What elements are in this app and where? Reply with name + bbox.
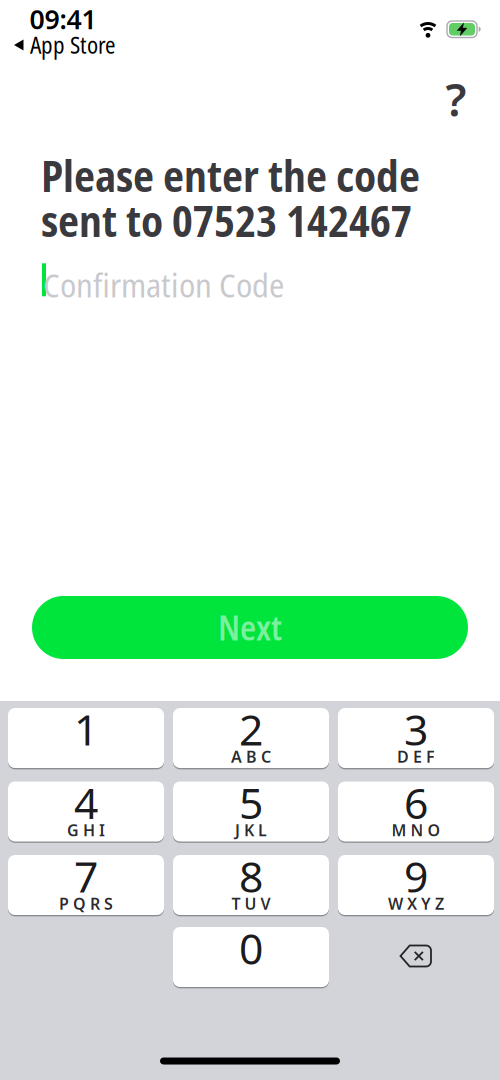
staticText: 9 (404, 848, 428, 904)
button[interactable]: 4 (8, 781, 164, 843)
staticText: Confirmation Code (43, 262, 284, 307)
button[interactable]: 2 (173, 708, 329, 769)
staticText: 1 (74, 701, 98, 757)
staticText: D E F (397, 746, 435, 767)
staticText: G H I (67, 819, 105, 841)
button[interactable]: 7 (8, 855, 164, 916)
staticText: W X Y Z (388, 893, 444, 914)
staticText: 2 (239, 701, 263, 757)
button[interactable]: 6 (338, 781, 494, 843)
staticText: P Q R S (59, 893, 113, 914)
button[interactable]: Next (32, 596, 468, 659)
button[interactable]: ? (434, 77, 478, 121)
staticText: 09:41 (29, 1, 96, 37)
staticText: 4 (74, 774, 98, 831)
staticText: A B C (231, 746, 271, 767)
button[interactable]: Confirmation Code (32, 260, 469, 304)
staticText: 8 (239, 848, 263, 904)
staticText: 5 (239, 774, 263, 831)
button[interactable]: App Store (14, 36, 115, 54)
staticText: 3 (404, 701, 428, 757)
staticText: Next (218, 605, 282, 650)
staticText: 0 (239, 920, 263, 976)
button[interactable]: 9 (338, 855, 494, 916)
staticText: App Store (30, 30, 115, 60)
button[interactable]: 3 (338, 708, 494, 769)
staticText: J K L (235, 819, 267, 841)
staticText: ? (445, 69, 466, 129)
staticText: 7 (74, 848, 98, 904)
staticText: T U V (231, 893, 270, 914)
staticText: sent to 07523 142467 (41, 192, 412, 249)
button[interactable]: 5 (173, 781, 329, 843)
button[interactable]: 8 (173, 855, 329, 916)
staticText: M N O (391, 819, 440, 841)
button[interactable] (386, 926, 446, 986)
staticText: Please enter the code (41, 147, 420, 204)
button[interactable]: 0 (173, 927, 329, 988)
button[interactable]: 1 (8, 708, 164, 769)
staticText: 6 (404, 774, 428, 831)
